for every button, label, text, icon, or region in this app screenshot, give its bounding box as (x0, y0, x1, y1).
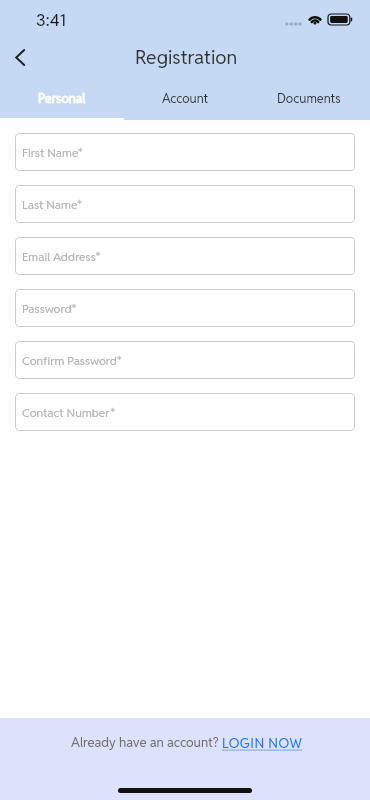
button[interactable]: Confirm Password* (15, 341, 355, 379)
button[interactable]: Contact Number* (15, 393, 355, 431)
button[interactable]: Password* (15, 289, 355, 327)
button[interactable]: Personal (0, 86, 124, 120)
button[interactable]: Email Address* (15, 237, 355, 275)
button[interactable]: Documents (247, 86, 370, 120)
button[interactable]: First Name* (15, 133, 355, 171)
staticText: Personal (38, 90, 86, 106)
staticText: Email Address* (22, 249, 101, 264)
staticText: Account (162, 90, 209, 106)
staticText: LOGIN NOW (222, 734, 303, 751)
button[interactable]: Last Name* (15, 185, 355, 223)
staticText: Last Name* (22, 197, 82, 212)
staticText: Already have an account? (71, 734, 222, 751)
staticText: Documents (277, 90, 341, 106)
button[interactable]: Back (3, 41, 36, 74)
staticText: 3:41 (36, 9, 67, 31)
staticText: First Name* (22, 145, 83, 160)
staticText: Registration (135, 45, 238, 70)
staticText: Password* (22, 301, 77, 316)
staticText: Contact Number* (22, 405, 116, 420)
staticText: Confirm Password* (22, 353, 122, 368)
button[interactable]: Account (124, 86, 247, 120)
button[interactable]: LOGIN NOW (222, 734, 303, 751)
